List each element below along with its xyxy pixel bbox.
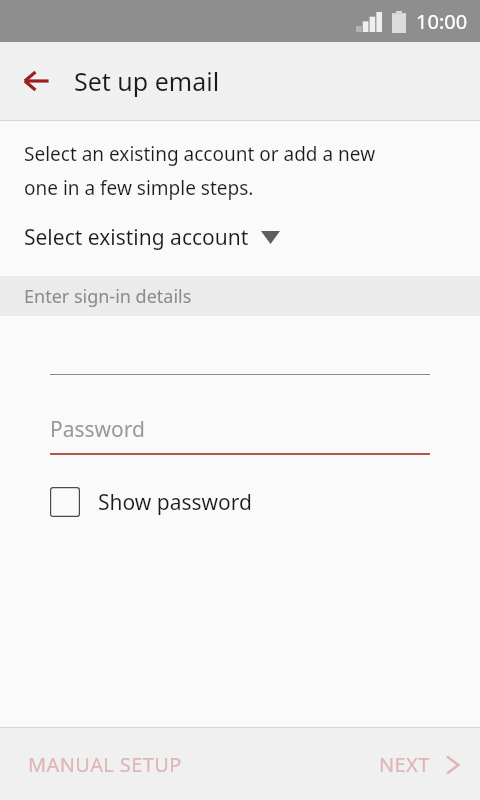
button[interactable]: Select existing account: [0, 221, 480, 254]
button[interactable]: Back: [8, 53, 64, 109]
staticText: one in a few simple steps.: [24, 175, 254, 201]
button[interactable]: NEXT: [365, 737, 480, 792]
button[interactable]: [0, 350, 480, 375]
staticText: MANUAL SETUP: [28, 751, 182, 778]
staticText: 10:00: [416, 8, 468, 35]
staticText: Select existing account: [24, 223, 249, 252]
staticText: Enter sign-in details: [24, 284, 192, 309]
staticText: NEXT: [379, 751, 430, 778]
button[interactable]: Password: [0, 415, 480, 455]
staticText: Show password: [98, 488, 252, 517]
button[interactable]: Show password: [0, 483, 268, 521]
staticText: Select an existing account or add a new: [24, 141, 376, 167]
staticText: Set up email: [74, 64, 220, 98]
staticText: Password: [50, 415, 145, 444]
button[interactable]: MANUAL SETUP: [0, 737, 196, 792]
